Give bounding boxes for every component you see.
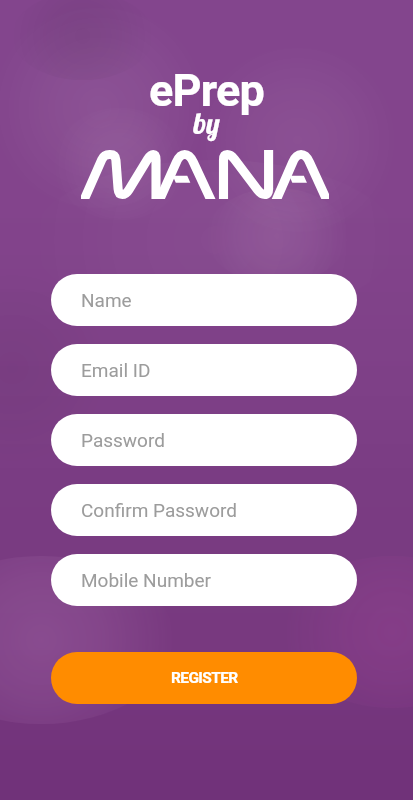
button[interactable]: REGISTER	[51, 652, 357, 704]
staticText: REGISTER	[171, 669, 238, 687]
button[interactable]: Confirm Password	[51, 484, 357, 536]
staticText: Password	[81, 429, 165, 451]
staticText: Name	[81, 289, 132, 311]
staticText: ePrep	[0, 64, 413, 117]
staticText: Mobile Number	[81, 569, 211, 591]
staticText: Confirm Password	[81, 499, 237, 521]
button[interactable]: Mobile Number	[51, 554, 357, 606]
button[interactable]: Email ID	[51, 344, 357, 396]
staticText: by	[0, 105, 413, 141]
staticText: Email ID	[81, 359, 151, 381]
button[interactable]: Name	[51, 274, 357, 326]
button[interactable]: Password	[51, 414, 357, 466]
